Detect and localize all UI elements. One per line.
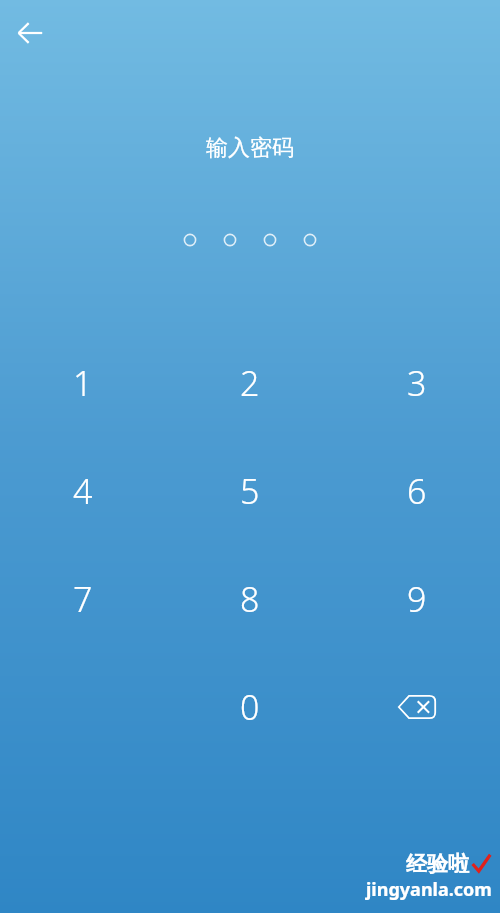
staticText: 7 [73,576,93,622]
staticText: 0 [240,684,260,730]
staticText: 1 [73,360,93,406]
button[interactable]: 4 [0,457,166,525]
staticText: jingyanla.com [366,877,492,902]
staticText: 9 [407,576,427,622]
button[interactable]: 9 [333,565,500,633]
staticText: 6 [407,468,427,514]
staticText: 2 [240,360,260,406]
button[interactable]: 5 [166,457,333,525]
staticText: 经验啦 [406,851,469,877]
button[interactable]: 8 [166,565,333,633]
button[interactable]: 0 [166,673,333,741]
staticText: 5 [240,468,260,514]
staticText: 输入密码 [206,134,294,162]
button[interactable]: 6 [333,457,500,525]
button[interactable]: 2 [166,349,333,417]
button[interactable]: 1 [0,349,166,417]
button[interactable]: 3 [333,349,500,417]
staticText: 4 [73,468,93,514]
staticText: 8 [240,576,260,622]
staticText: 3 [407,360,427,406]
button[interactable]: 7 [0,565,166,633]
button[interactable]: Back [6,9,54,57]
button[interactable]: Delete [333,673,500,741]
